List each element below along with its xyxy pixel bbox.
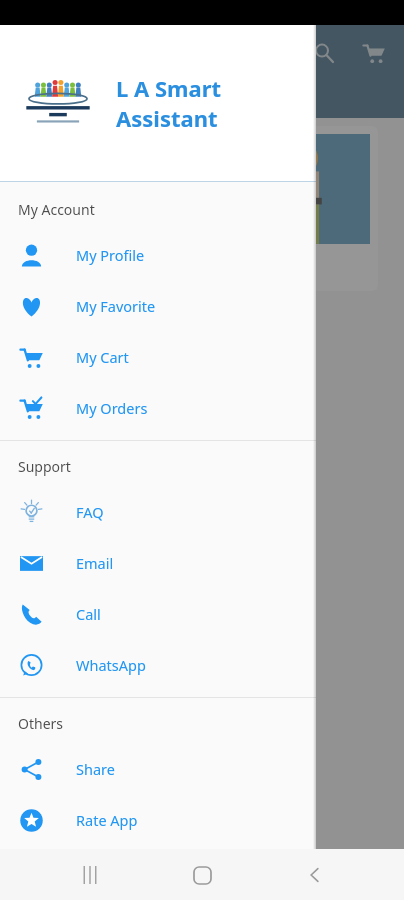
button[interactable]: Share	[0, 743, 316, 794]
button[interactable]: Back	[292, 852, 338, 898]
button[interactable]: My Orders	[0, 382, 316, 433]
button[interactable]: My Cart	[0, 331, 316, 382]
staticText: My Cart	[76, 347, 129, 367]
staticText: Call	[76, 604, 101, 624]
staticText: My Favorite	[76, 296, 156, 316]
button[interactable]: Call	[0, 588, 316, 639]
staticText: CATION	[210, 91, 255, 107]
button[interactable]: Home	[179, 852, 225, 898]
button[interactable]: My Favorite	[0, 280, 316, 331]
button[interactable]: CATION	[200, 91, 265, 107]
staticText: Email	[76, 553, 114, 573]
staticText: WhatsApp	[76, 655, 146, 675]
staticText: Support	[18, 457, 71, 476]
staticText: L A Smart Assistant	[116, 73, 222, 133]
button[interactable]: Search	[304, 33, 344, 73]
button[interactable]: WhatsApp	[0, 639, 316, 690]
button[interactable]: Rate App	[0, 794, 316, 845]
staticText: My Account	[18, 200, 95, 219]
staticText: My Profile	[76, 245, 145, 265]
button[interactable]: Recents	[67, 852, 113, 898]
button[interactable]: Cart	[354, 33, 394, 73]
button[interactable]: FAQ	[0, 486, 316, 537]
staticText: FAQ	[76, 502, 104, 522]
button[interactable]: ce charge	[228, 126, 378, 291]
staticText: Rate App	[76, 810, 138, 830]
button[interactable]: Email	[0, 537, 316, 588]
staticText: My Orders	[76, 398, 148, 418]
staticText: Share	[76, 759, 115, 779]
staticText: Others	[18, 714, 64, 733]
button[interactable]: My Profile	[0, 229, 316, 280]
